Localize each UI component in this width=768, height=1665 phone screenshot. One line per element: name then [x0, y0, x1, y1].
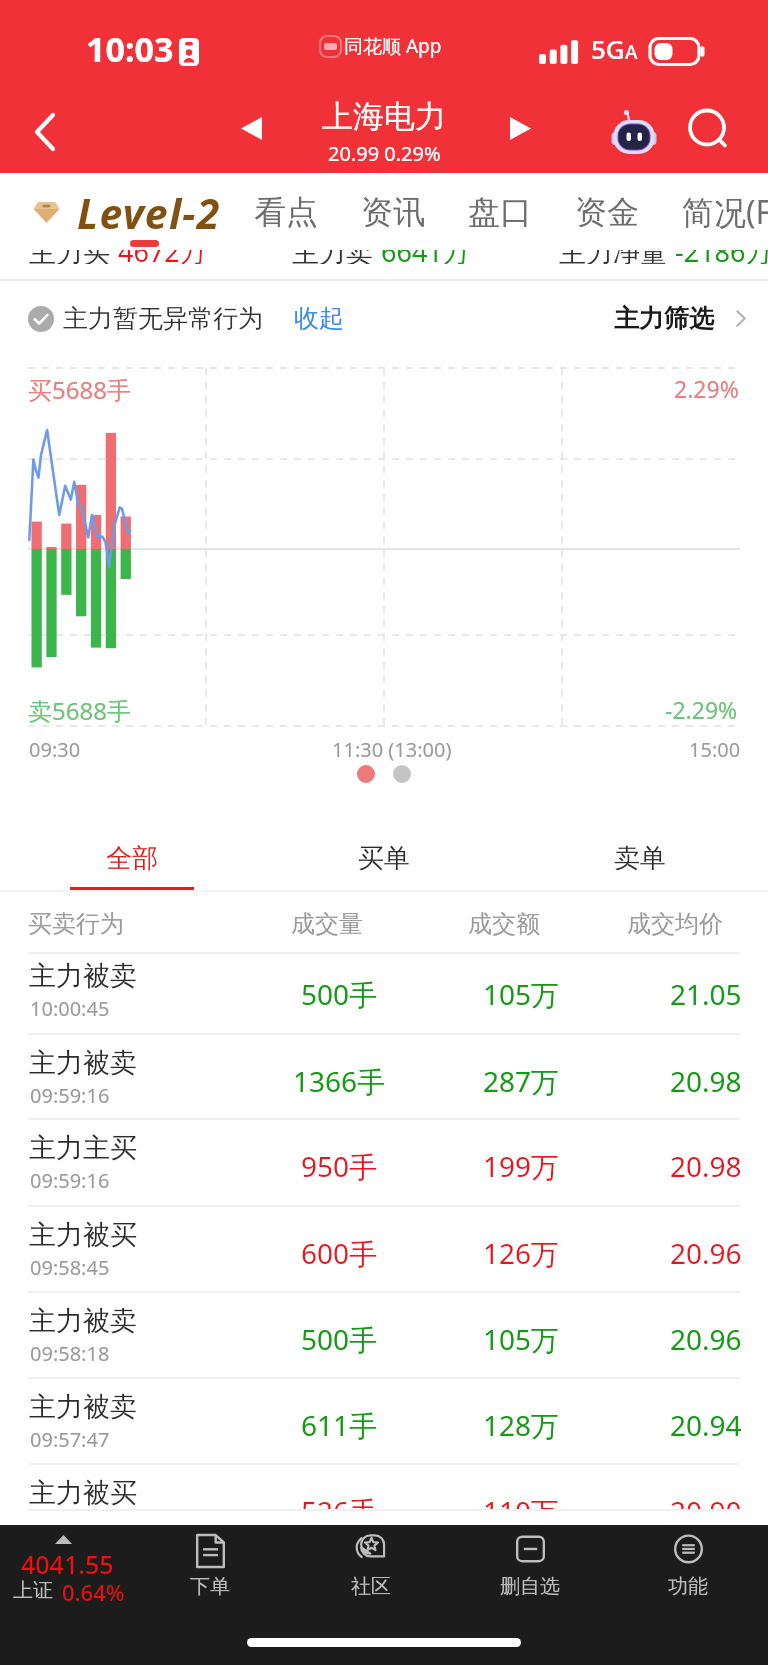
button[interactable]: 主力被买 [0, 1207, 768, 1293]
staticText: 09:58:45 [30, 1254, 110, 1281]
button[interactable]: Search [682, 106, 738, 158]
button[interactable]: 主力主买 [0, 1120, 768, 1207]
staticText: 199万 [441, 1147, 601, 1185]
button[interactable]: 功能 [632, 1525, 744, 1605]
staticText: 主力被买 [29, 1218, 137, 1252]
staticText: 4041.55 [21, 1547, 114, 1581]
button[interactable]: 主力筛选 [614, 303, 746, 334]
staticText: 看点 [254, 192, 318, 232]
staticText: 主力筛选 [614, 303, 714, 334]
staticText: 收起 [294, 303, 344, 334]
staticText: 主力暂无异常行为 [63, 303, 263, 334]
staticText: 526手 [259, 1492, 419, 1511]
staticText: -2186万 [675, 250, 768, 264]
staticText: 资金 [575, 192, 639, 232]
staticText: 同花顺 App [344, 33, 442, 59]
staticText: 4672万 [118, 250, 207, 264]
staticText: 全部 [106, 842, 158, 875]
staticText: 主力买 [29, 250, 118, 264]
button[interactable]: 主力暂无异常行为 [28, 303, 344, 334]
staticText: Level-2 [77, 185, 221, 231]
staticText: 09:58:18 [30, 1340, 110, 1367]
staticText: 主力被卖 [29, 1390, 137, 1424]
staticText: 主力卖 [292, 250, 381, 264]
staticText: 买5688手 [28, 373, 131, 406]
button[interactable]: Level-2 [33, 189, 221, 235]
staticText: 950手 [259, 1147, 419, 1185]
button[interactable]: 卖单 [512, 795, 768, 892]
staticText: 09:30 [29, 736, 81, 763]
button[interactable]: 资讯 [361, 189, 425, 235]
button[interactable]: 主力被卖 [0, 1293, 768, 1379]
staticText: 600手 [259, 1234, 419, 1272]
staticText: 主力被卖 [29, 1046, 137, 1080]
staticText: 110万 [441, 1492, 601, 1511]
button[interactable]: 社区 [315, 1525, 427, 1605]
button[interactable]: 主力被卖 [0, 1035, 768, 1120]
staticText: 09:59:16 [30, 1167, 110, 1194]
button[interactable]: 盘口 [468, 189, 532, 235]
button[interactable]: 简况(F [682, 189, 768, 235]
staticText: 20.98 [670, 1147, 742, 1185]
staticText: 下单 [190, 1574, 230, 1599]
button[interactable]: 上证 index [0, 1525, 142, 1605]
staticText: 287万 [441, 1062, 601, 1100]
staticText: 10:03 [86, 26, 174, 72]
staticText: 21.05 [670, 975, 742, 1013]
staticText: 功能 [668, 1574, 708, 1599]
button[interactable]: AI assistant [605, 106, 663, 158]
staticText: -2.29% [665, 694, 738, 725]
staticText: 2.29% [674, 373, 739, 404]
staticText: 09:57:47 [30, 1426, 110, 1453]
staticText: 500手 [259, 975, 419, 1013]
staticText: 资讯 [361, 192, 425, 232]
button[interactable]: Page 1 [357, 765, 375, 783]
staticText: 20.96 [670, 1320, 742, 1358]
staticText: 买单 [358, 842, 410, 875]
staticText: 盘口 [468, 192, 532, 232]
staticText: 删自选 [500, 1574, 560, 1599]
staticText: 611手 [259, 1406, 419, 1444]
button[interactable]: 删自选 [474, 1525, 586, 1605]
button[interactable]: 主力被买 [0, 1465, 768, 1511]
staticText: 主力被买 [29, 1476, 137, 1510]
staticText: 105万 [441, 975, 601, 1013]
staticText: 20.99 0.29% [328, 140, 441, 167]
button[interactable]: Next stock [494, 102, 546, 154]
staticText: 成交额 [468, 909, 540, 939]
button[interactable]: Page 2 [393, 765, 411, 783]
staticText: 10:00:45 [30, 995, 110, 1022]
staticText: A [625, 39, 638, 65]
button[interactable]: 主力被卖 [0, 1379, 768, 1465]
staticText: 买卖行为 [28, 909, 124, 939]
staticText: 6641万 [381, 250, 470, 264]
staticText: 卖5688手 [28, 694, 131, 727]
staticText: 09:59:16 [30, 1082, 110, 1109]
staticText: 20.98 [670, 1062, 742, 1100]
staticText: 简况(F [682, 190, 768, 234]
button[interactable]: 买单 [256, 795, 512, 892]
staticText: 105万 [441, 1320, 601, 1358]
staticText: 主力被卖 [29, 959, 137, 993]
button[interactable]: 下单 [154, 1525, 266, 1605]
button[interactable]: Back [14, 101, 76, 163]
staticText: 主力主买 [29, 1131, 137, 1165]
button[interactable]: Previous stock [225, 102, 277, 154]
button[interactable]: 上海电力 [322, 97, 446, 167]
staticText: 0.64% [62, 1577, 125, 1607]
staticText: 成交均价 [627, 909, 723, 939]
button[interactable]: 资金 [575, 189, 639, 235]
staticText: 1366手 [259, 1062, 419, 1100]
staticText: 主力被卖 [29, 1304, 137, 1338]
button[interactable]: 看点 [254, 189, 318, 235]
staticText: 5G [591, 31, 625, 66]
staticText: 126万 [441, 1234, 601, 1272]
button[interactable]: 主力被卖 [0, 954, 768, 1035]
button[interactable]: 全部 [0, 795, 256, 892]
staticText: 15:00 [689, 736, 741, 763]
staticText: 主力净量 [559, 250, 675, 264]
staticText: 上海电力 [322, 97, 446, 136]
staticText: 上证 [13, 1578, 53, 1603]
staticText: 成交量 [291, 909, 363, 939]
staticText: 20.96 [670, 1234, 742, 1272]
